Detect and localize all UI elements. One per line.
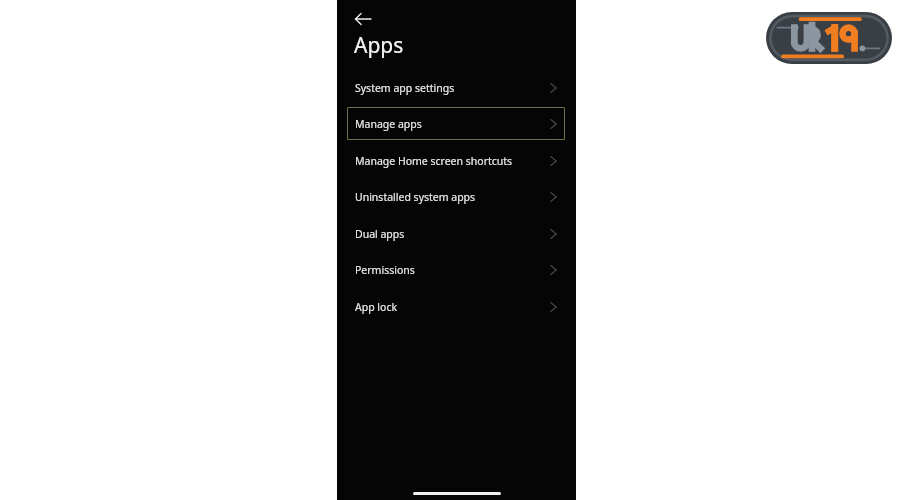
staticText: Apps xyxy=(354,31,404,60)
staticText: System app settings xyxy=(355,81,455,95)
button[interactable]: Manage apps xyxy=(347,107,565,140)
staticText: App lock xyxy=(355,300,398,314)
staticText: Dual apps xyxy=(355,227,405,241)
button[interactable]: Permissions xyxy=(347,253,565,286)
staticText: Manage Home screen shortcuts xyxy=(355,154,513,168)
button[interactable]: Manage Home screen shortcuts xyxy=(347,144,565,177)
staticText: Permissions xyxy=(355,263,415,277)
button[interactable]: App lock xyxy=(347,290,565,323)
staticText: Manage apps xyxy=(355,117,422,131)
button[interactable]: Back xyxy=(348,4,378,34)
button[interactable]: System app settings xyxy=(347,71,565,104)
button[interactable]: Uninstalled system apps xyxy=(347,180,565,213)
button[interactable]: Dual apps xyxy=(347,217,565,250)
staticText: Uninstalled system apps xyxy=(355,190,476,204)
